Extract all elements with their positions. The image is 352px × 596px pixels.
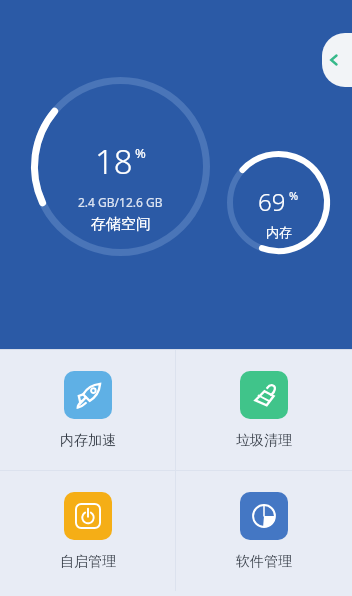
staticText: 软件管理 [236, 553, 292, 571]
staticText: 垃圾清理 [236, 432, 292, 450]
staticText: 69 [258, 185, 286, 218]
button[interactable]: Expand panel [322, 33, 352, 87]
staticText: 18 [95, 139, 133, 184]
staticText: % [135, 144, 146, 162]
button[interactable]: 自启管理 [0, 471, 175, 591]
staticText: 内存加速 [60, 432, 116, 450]
staticText: 存储空间 [91, 215, 151, 234]
button[interactable]: 垃圾清理 [176, 350, 352, 470]
staticText: 2.4 GB/12.6 GB [78, 194, 163, 210]
button[interactable]: 软件管理 [176, 471, 352, 591]
staticText: 内存 [266, 224, 292, 240]
button[interactable]: 内存加速 [0, 350, 175, 470]
staticText: % [289, 188, 299, 203]
staticText: 自启管理 [60, 553, 116, 571]
